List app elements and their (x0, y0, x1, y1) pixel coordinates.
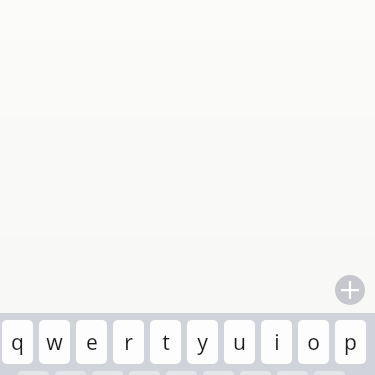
button[interactable] (166, 371, 197, 375)
button[interactable]: r (113, 320, 144, 364)
staticText: q (11, 328, 24, 357)
button[interactable]: o (298, 320, 329, 364)
button[interactable] (277, 371, 308, 375)
button[interactable]: t (150, 320, 181, 364)
button[interactable] (55, 371, 86, 375)
staticText: u (233, 328, 246, 357)
button[interactable] (240, 371, 271, 375)
button[interactable]: Add (335, 275, 365, 305)
staticText: e (86, 328, 98, 357)
staticText: o (307, 328, 320, 357)
button[interactable]: i (261, 320, 292, 364)
button[interactable]: u (224, 320, 255, 364)
button[interactable]: y (187, 320, 218, 364)
button[interactable]: w (39, 320, 70, 364)
button[interactable]: e (76, 320, 107, 364)
staticText: t (162, 328, 170, 357)
button[interactable] (18, 371, 49, 375)
staticText: w (46, 328, 63, 357)
staticText: p (344, 328, 357, 357)
staticText: y (197, 328, 208, 357)
staticText: i (274, 328, 280, 357)
button[interactable] (314, 371, 345, 375)
button[interactable] (203, 371, 234, 375)
button[interactable]: p (335, 320, 366, 364)
button[interactable] (129, 371, 160, 375)
staticText: r (124, 328, 133, 357)
button[interactable]: q (2, 320, 33, 364)
button[interactable] (92, 371, 123, 375)
